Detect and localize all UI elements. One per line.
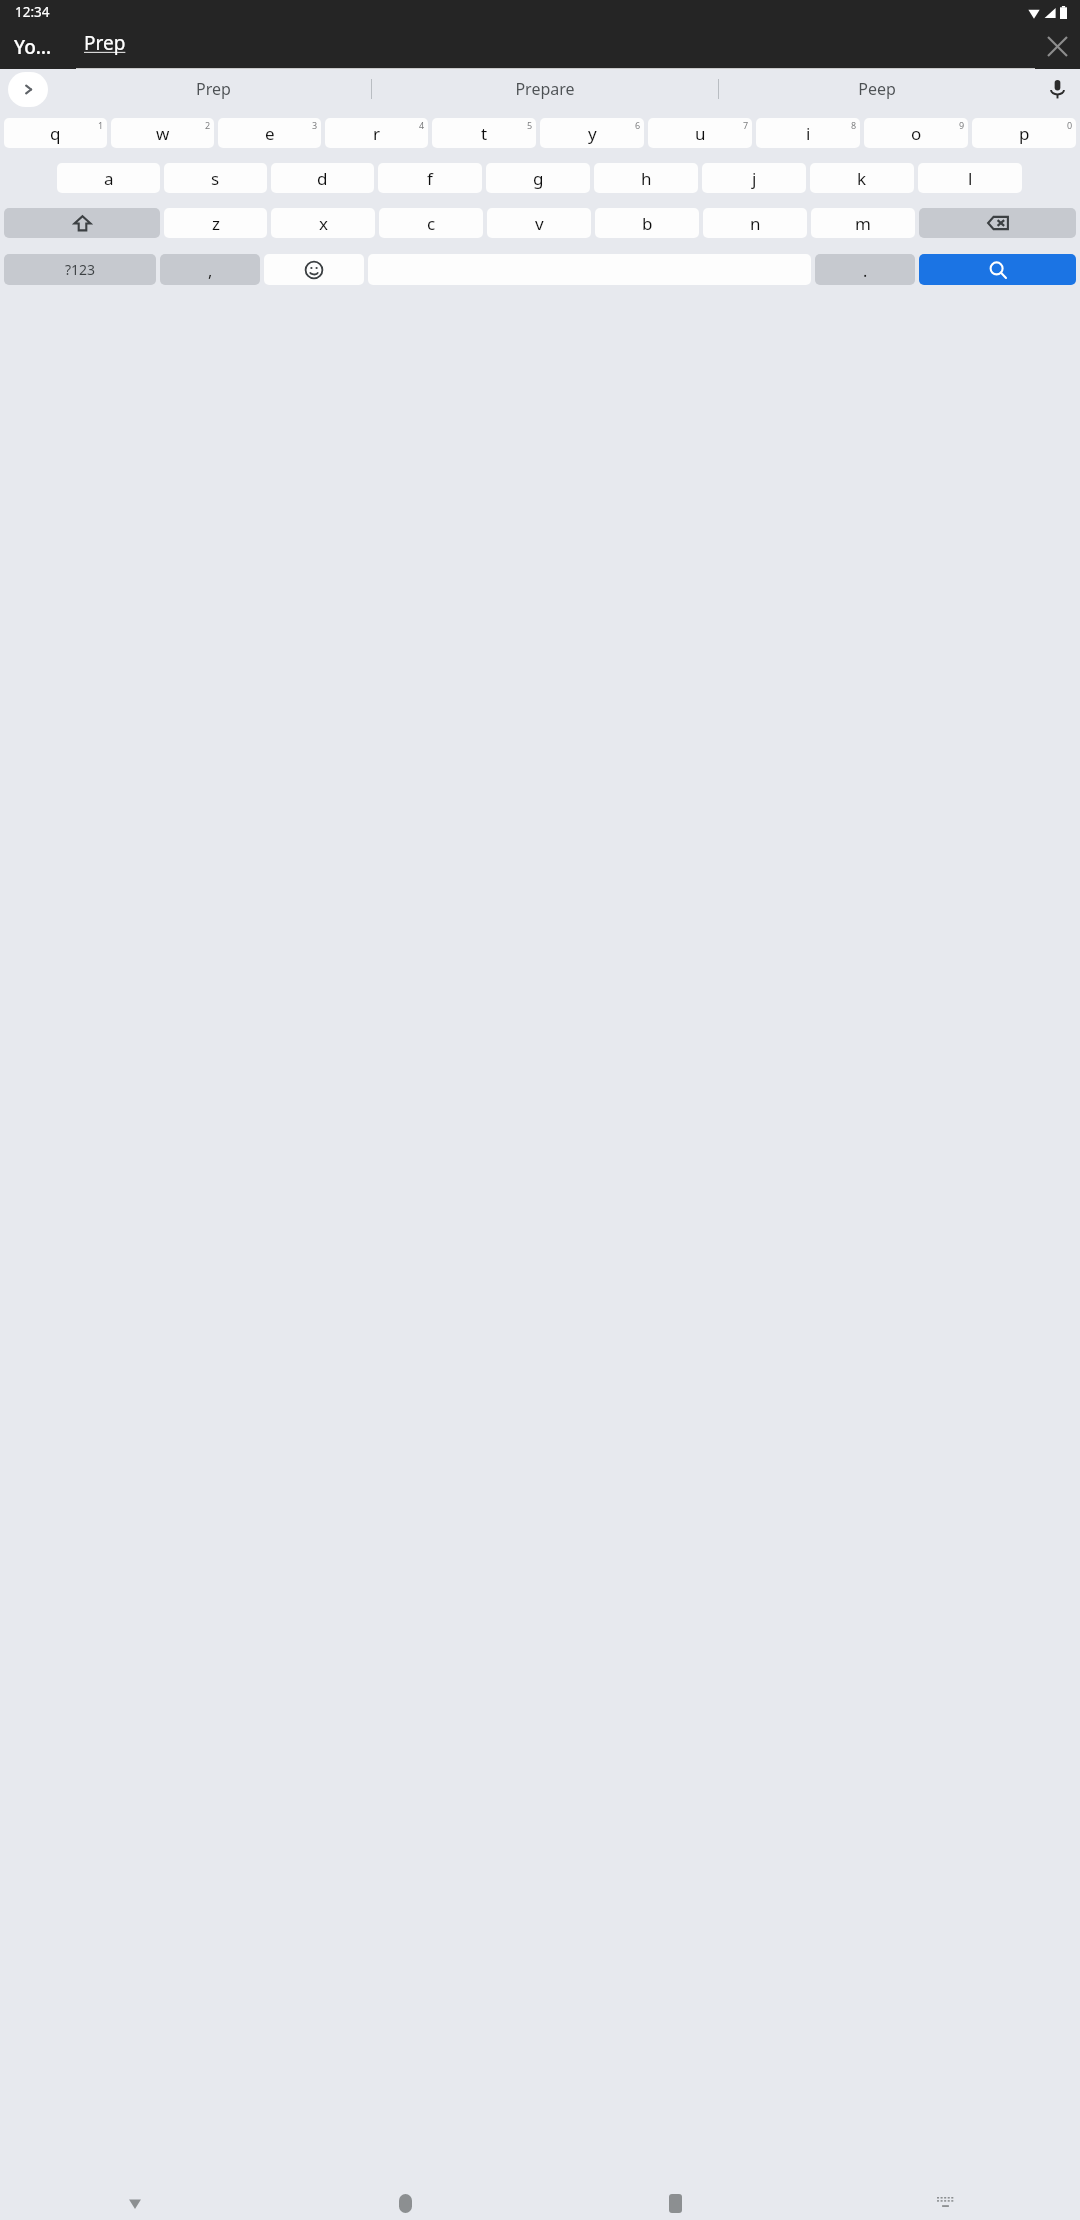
staticText: j xyxy=(752,167,757,190)
button[interactable]: h xyxy=(594,163,698,193)
staticText: ?123 xyxy=(65,260,96,279)
button[interactable]: n xyxy=(703,208,807,238)
staticText: t xyxy=(481,122,488,145)
staticText: 2 xyxy=(205,119,211,131)
button[interactable]: c xyxy=(379,208,483,238)
staticText: e xyxy=(265,122,275,145)
button[interactable]: d xyxy=(271,163,374,193)
button[interactable]: Prep xyxy=(56,69,371,109)
button[interactable]: x xyxy=(271,208,375,238)
button[interactable]: j xyxy=(702,163,806,193)
button[interactable]: Backspace xyxy=(919,208,1076,238)
button[interactable]: Voice input xyxy=(1034,69,1080,109)
staticText: 4 xyxy=(419,119,425,131)
staticText: q xyxy=(50,122,61,145)
staticText: v xyxy=(535,212,544,235)
button[interactable]: q xyxy=(4,118,107,148)
button[interactable]: m xyxy=(811,208,915,238)
staticText: m xyxy=(855,212,871,235)
staticText: 12:34 xyxy=(15,3,50,21)
button[interactable]: ?123 xyxy=(4,254,156,285)
staticText: k xyxy=(857,167,867,190)
button[interactable]: s xyxy=(164,163,267,193)
button[interactable]: Peep xyxy=(719,69,1034,109)
staticText: w xyxy=(156,122,170,145)
button[interactable]: o xyxy=(864,118,968,148)
button[interactable]: y xyxy=(540,118,644,148)
button[interactable]: Prep xyxy=(76,24,1035,69)
staticText: o xyxy=(911,122,922,145)
button[interactable]: u xyxy=(648,118,752,148)
staticText: 1 xyxy=(98,119,104,131)
staticText: a xyxy=(104,167,114,190)
button[interactable]: r xyxy=(325,118,428,148)
staticText: f xyxy=(427,167,433,190)
staticText: l xyxy=(968,167,973,190)
staticText: d xyxy=(317,167,328,190)
button[interactable]: l xyxy=(918,163,1022,193)
staticText: Prep xyxy=(84,30,126,56)
staticText: Prepare xyxy=(515,78,575,100)
staticText: 8 xyxy=(851,119,857,131)
button[interactable]: k xyxy=(810,163,914,193)
button[interactable]: Recents xyxy=(540,2186,810,2220)
button[interactable]: Back xyxy=(0,2186,270,2220)
button[interactable]: t xyxy=(432,118,536,148)
button[interactable]: . xyxy=(815,254,915,285)
staticText: p xyxy=(1019,122,1030,145)
button[interactable]: b xyxy=(595,208,699,238)
staticText: 9 xyxy=(959,119,965,131)
button[interactable]: Switch keyboard xyxy=(810,2186,1080,2220)
button[interactable]: p xyxy=(972,118,1076,148)
staticText: , xyxy=(208,260,213,282)
button[interactable]: z xyxy=(164,208,267,238)
button[interactable]: More suggestions xyxy=(8,72,48,107)
button[interactable]: Home xyxy=(270,2186,540,2220)
staticText: 7 xyxy=(743,119,749,131)
button[interactable]: Prepare xyxy=(372,69,718,109)
staticText: b xyxy=(642,212,653,235)
staticText: 0 xyxy=(1067,119,1073,131)
button[interactable]: Clear search xyxy=(1035,24,1080,69)
button[interactable]: , xyxy=(160,254,260,285)
staticText: x xyxy=(319,212,328,235)
button[interactable]: i xyxy=(756,118,860,148)
button[interactable]: g xyxy=(486,163,590,193)
staticText: y xyxy=(588,122,597,145)
button[interactable]: Emoji xyxy=(264,254,364,285)
staticText: z xyxy=(212,212,220,235)
button[interactable]: e xyxy=(218,118,321,148)
staticText: Prep xyxy=(196,78,231,100)
button[interactable]: a xyxy=(57,163,160,193)
staticText: n xyxy=(750,212,761,235)
button[interactable]: Yo… xyxy=(14,34,76,60)
button[interactable]: v xyxy=(487,208,591,238)
staticText: . xyxy=(863,260,868,282)
staticText: Peep xyxy=(858,78,896,100)
staticText: g xyxy=(533,167,544,190)
staticText: i xyxy=(806,122,811,145)
button[interactable]: Search xyxy=(919,254,1076,285)
button[interactable]: w xyxy=(111,118,214,148)
staticText: u xyxy=(695,122,706,145)
button[interactable]: f xyxy=(378,163,482,193)
staticText: h xyxy=(641,167,652,190)
button[interactable]: Shift xyxy=(4,208,160,238)
staticText: r xyxy=(373,122,381,145)
staticText: c xyxy=(427,212,436,235)
staticText: s xyxy=(211,167,220,190)
staticText: 3 xyxy=(312,119,318,131)
staticText: 6 xyxy=(635,119,641,131)
staticText: 5 xyxy=(527,119,533,131)
